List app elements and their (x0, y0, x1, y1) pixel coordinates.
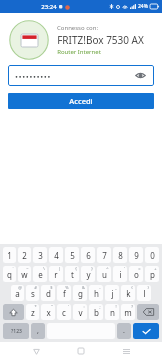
button[interactable]: 8 (113, 247, 127, 263)
staticText: l (143, 288, 146, 299)
button[interactable]: i (113, 266, 127, 282)
staticText: 2 (22, 250, 27, 261)
staticText: ' (124, 266, 125, 271)
button[interactable]: 2 (18, 247, 31, 263)
staticText: ; (99, 304, 101, 309)
staticText: \ (43, 266, 45, 271)
staticText: Accedi (69, 96, 93, 106)
button[interactable]: Cancella (137, 304, 159, 320)
staticText: 0 (150, 250, 155, 261)
button[interactable]: e (33, 266, 47, 282)
button[interactable]: g (73, 285, 87, 301)
staticText: " (51, 304, 53, 309)
staticText: d (46, 288, 51, 299)
staticText: 1 (7, 250, 12, 261)
staticText: . (123, 326, 125, 336)
button[interactable]: n (105, 304, 119, 320)
button[interactable]: 5 (65, 247, 79, 263)
staticText: FRITZ!Box 7530 AX (57, 33, 144, 47)
staticText: s (31, 288, 35, 299)
button[interactable]: u (97, 266, 111, 282)
button[interactable]: Accedi (8, 93, 154, 109)
button[interactable]: Simboli (3, 323, 29, 339)
staticText: n (110, 307, 115, 318)
button[interactable]: p (145, 266, 159, 282)
button[interactable]: b (89, 304, 103, 320)
staticText: Connesso con: (57, 24, 98, 32)
staticText: h (94, 288, 99, 299)
button[interactable]: , (31, 323, 45, 339)
button[interactable]: 6 (81, 247, 95, 263)
button[interactable]: l (137, 285, 151, 301)
staticText: v (78, 307, 83, 318)
staticText: t (71, 269, 74, 280)
button[interactable]: Invio (133, 323, 159, 339)
button[interactable]: o (129, 266, 143, 282)
staticText: | (58, 266, 61, 271)
staticText: 9 (134, 250, 139, 261)
button[interactable]: q (3, 266, 16, 282)
button[interactable]: j (105, 285, 119, 301)
button[interactable]: 1 (3, 247, 16, 263)
button[interactable]: f (57, 285, 71, 301)
staticText: x (46, 307, 51, 318)
button[interactable]: . (117, 323, 131, 339)
staticText: { (75, 266, 77, 271)
button[interactable]: c (57, 304, 71, 320)
button[interactable]: z (26, 304, 39, 320)
button[interactable]: t (65, 266, 79, 282)
staticText: ^ (106, 266, 109, 271)
button[interactable]: 3 (33, 247, 47, 263)
staticText: 6 (86, 250, 91, 261)
staticText: y (86, 269, 91, 280)
button[interactable]: s (26, 285, 39, 301)
staticText: ( (131, 285, 133, 290)
button[interactable]: Mostra password (8, 65, 154, 86)
button[interactable]: App recenti (117, 342, 135, 360)
button[interactable]: r (49, 266, 63, 282)
staticText: 5 (70, 250, 75, 261)
staticText: 8 (118, 250, 123, 261)
button[interactable]: Maiuscole (3, 304, 24, 320)
staticText: 4 (54, 250, 59, 261)
staticText: r (54, 269, 58, 280)
staticText: - (99, 285, 101, 290)
button[interactable]: k (121, 285, 135, 301)
button[interactable]: d (41, 285, 55, 301)
staticText: m (124, 307, 132, 318)
staticText: b (94, 307, 99, 318)
button[interactable]: 4 (49, 247, 63, 263)
staticText: , (37, 326, 39, 336)
staticText: % (65, 285, 69, 290)
staticText: 23:24 (41, 3, 57, 11)
button[interactable]: 0 (145, 247, 159, 263)
button[interactable]: Home (72, 342, 90, 360)
staticText: g (78, 288, 83, 299)
button[interactable]: 7 (97, 247, 111, 263)
staticText: p (150, 269, 155, 280)
button[interactable]: a (11, 285, 24, 301)
button[interactable]: x (41, 304, 55, 320)
staticText: ' (68, 304, 69, 309)
staticText: k (126, 288, 131, 299)
button[interactable]: Mostra password (134, 69, 147, 82)
staticText: } (91, 266, 93, 271)
staticText: w (21, 269, 28, 280)
staticText: u (102, 269, 107, 280)
staticText: 24% (138, 3, 148, 10)
button[interactable]: v (73, 304, 87, 320)
button[interactable]: w (18, 266, 31, 282)
button[interactable]: y (81, 266, 95, 282)
staticText: ! (115, 304, 117, 309)
staticText: 3 (38, 250, 43, 261)
staticText: ?123 (11, 328, 22, 335)
button[interactable]: 9 (129, 247, 143, 263)
staticText: ~ (26, 266, 29, 271)
button[interactable]: Indietro (27, 342, 45, 360)
staticText: a (15, 288, 20, 299)
button[interactable]: m (121, 304, 135, 320)
button[interactable]: h (89, 285, 103, 301)
staticText: z (31, 307, 35, 318)
staticText: c (62, 307, 66, 318)
